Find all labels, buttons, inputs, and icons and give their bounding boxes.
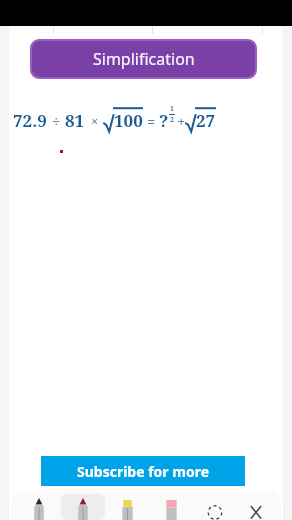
button[interactable]: Lasso select xyxy=(193,494,237,520)
staticText: ÷ xyxy=(52,111,61,131)
button[interactable]: Eraser xyxy=(149,494,193,520)
button[interactable]: Simplification xyxy=(30,39,257,79)
staticText: ? xyxy=(159,109,169,132)
staticText: 81 xyxy=(65,109,85,132)
staticText: Subscribe for more xyxy=(77,462,210,481)
staticText: + xyxy=(177,111,186,131)
staticText: 2 xyxy=(170,115,174,125)
staticText: 72.9 xyxy=(13,109,47,132)
button[interactable]: Pen xyxy=(17,494,61,520)
staticText: = xyxy=(147,111,156,131)
staticText: 27 xyxy=(196,109,216,132)
button[interactable]: Close xyxy=(237,494,275,520)
staticText: 100 xyxy=(114,109,143,132)
button[interactable]: Subscribe for more xyxy=(41,456,245,486)
button[interactable]: Marker xyxy=(61,494,105,520)
staticText: Simplification xyxy=(93,48,195,70)
button[interactable]: Highlighter xyxy=(105,494,149,520)
staticText: × xyxy=(91,112,99,130)
staticText: 1 xyxy=(170,104,174,114)
